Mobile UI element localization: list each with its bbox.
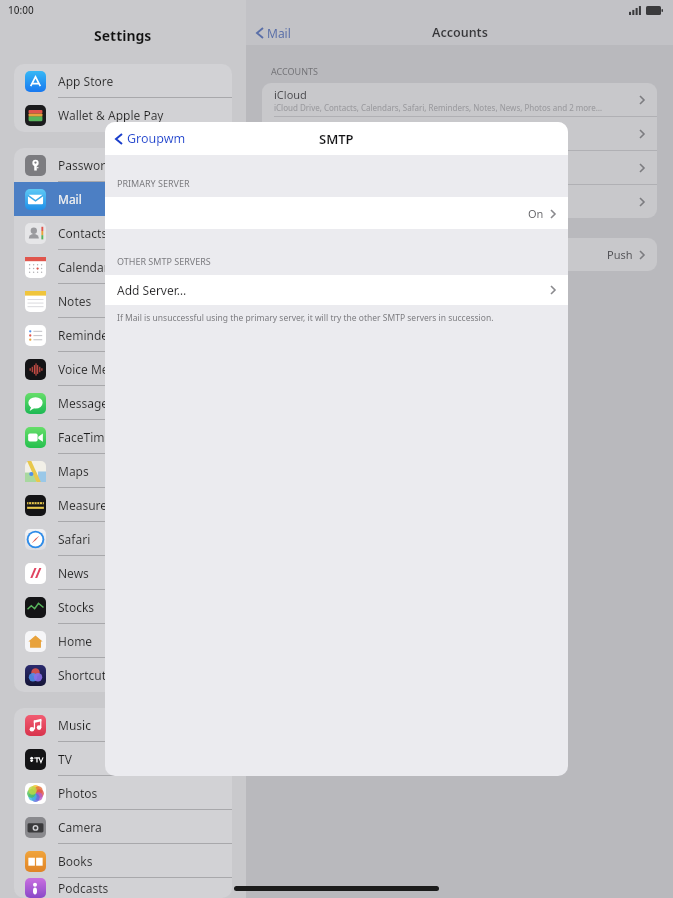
button[interactable]: Wallet & Apple Pay [14,98,232,132]
staticText: iCloud [274,87,307,102]
button[interactable]: Notes [14,284,232,318]
button[interactable]: App Store [14,64,232,98]
staticText: Reminders [58,327,119,343]
staticText: Add Server… [117,282,187,298]
button[interactable]: Mail [256,25,291,41]
staticText: Camera [58,819,102,835]
button[interactable]: Camera [14,810,232,844]
staticText: Safari [58,531,91,547]
button[interactable]: Calendar [14,250,232,284]
staticText: Books [58,853,93,869]
staticText: iCloud Drive, Contacts, Calendars, Safar… [274,102,603,113]
button[interactable]: Photos [14,776,232,810]
staticText: Calendar [58,259,109,275]
staticText: Photos [58,785,98,801]
staticText: Shortcuts [58,667,112,683]
staticText: Messages [58,395,114,411]
staticText: Notes [58,293,92,309]
button[interactable]: FaceTime [14,420,232,454]
button[interactable]: Stocks [14,590,232,624]
staticText: ACCOUNTS [271,65,318,77]
staticText: Contacts [58,225,108,241]
button[interactable]: Home [14,624,232,658]
staticText: FaceTime [58,429,112,445]
staticText: If Mail is unsuccessful using the primar… [117,312,494,324]
button[interactable]: Shortcuts [14,658,232,692]
staticText: 10:00 [8,3,34,17]
staticText: Stocks [58,599,95,615]
staticText: On [528,206,544,221]
button[interactable]: Reminders [14,318,232,352]
staticText: Groupwm [127,130,186,147]
button[interactable]: Messages [14,386,232,420]
staticText: PRIMARY SERVER [117,177,190,189]
staticText: Maps [58,463,89,479]
button[interactable]: Music [14,708,232,742]
staticText: Mail [267,25,291,41]
button[interactable]: Add Server… [105,275,568,305]
button[interactable]: Safari [14,522,232,556]
staticText: App Store [58,73,114,89]
button[interactable] [262,151,657,184]
button[interactable]: TV [14,742,232,776]
button[interactable]: Groupwm [115,130,186,147]
button[interactable]: Mail [14,182,232,216]
button[interactable]: Maps [14,454,232,488]
staticText: Passwords [58,157,119,173]
button[interactable] [262,117,657,150]
button[interactable]: Voice Memos [14,352,232,386]
staticText: TV [58,751,72,767]
staticText: SMTP [319,130,354,148]
button[interactable]: iCloud [262,83,657,116]
staticText: Home [58,633,93,649]
button[interactable]: Passwords [14,148,232,182]
staticText: Mail [58,191,82,207]
button[interactable]: News [14,556,232,590]
staticText: Music [58,717,91,733]
staticText: Measure [58,497,108,513]
staticText: Push [607,247,633,262]
staticText: OTHER SMTP SERVERS [117,255,211,267]
staticText: News [58,565,89,581]
staticText: Settings [94,26,152,45]
button[interactable]: Push [262,238,657,271]
staticText: Voice Memos [58,361,133,377]
button[interactable] [262,185,657,218]
staticText: Wallet & Apple Pay [58,107,164,123]
button[interactable]: Podcasts [14,878,232,898]
button[interactable]: On [105,197,568,229]
button[interactable]: Contacts [14,216,232,250]
staticText: Podcasts [58,880,109,896]
button[interactable]: Books [14,844,232,878]
button[interactable]: Measure [14,488,232,522]
staticText: Accounts [432,24,488,41]
